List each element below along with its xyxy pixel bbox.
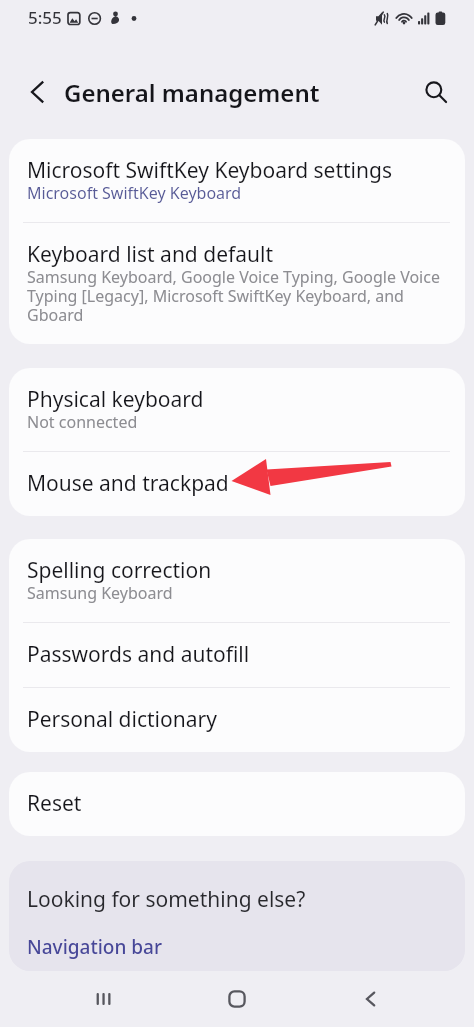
button[interactable]: Microsoft SwiftKey Keyboard settings (9, 139, 465, 222)
button[interactable]: Back (340, 971, 402, 1027)
staticText: Looking for something else? (27, 887, 306, 913)
staticText: Not connected (27, 413, 138, 432)
button[interactable]: Home (206, 971, 268, 1027)
button[interactable]: Mouse and trackpad (9, 452, 465, 516)
staticText: Mouse and trackpad (27, 471, 229, 497)
staticText: Samsung Keyboard, Google Voice Typing, G… (27, 268, 445, 325)
button[interactable]: Passwords and autofill (9, 623, 465, 687)
button[interactable]: Spelling correction (9, 539, 465, 622)
staticText: Microsoft SwiftKey Keyboard (27, 184, 242, 203)
staticText: Keyboard list and default (27, 242, 273, 268)
button[interactable]: Back (14, 68, 62, 116)
staticText: Passwords and autofill (27, 642, 250, 668)
staticText: Personal dictionary (27, 707, 217, 733)
button[interactable]: Personal dictionary (9, 688, 465, 752)
button[interactable]: Navigation bar (27, 935, 162, 959)
staticText: Physical keyboard (27, 387, 204, 413)
button[interactable]: Recents (72, 971, 134, 1027)
staticText: Spelling correction (27, 558, 212, 584)
staticText: Navigation bar (27, 935, 162, 959)
button[interactable]: Physical keyboard (9, 368, 465, 451)
button[interactable]: Keyboard list and default (9, 223, 465, 344)
staticText: General management (64, 76, 320, 109)
staticText: Reset (27, 791, 82, 817)
button[interactable]: Reset (9, 772, 465, 836)
staticText: Samsung Keyboard (27, 584, 173, 603)
staticText: 5:55 (28, 6, 62, 29)
staticText: Microsoft SwiftKey Keyboard settings (27, 158, 392, 184)
button[interactable]: Search (412, 68, 460, 116)
